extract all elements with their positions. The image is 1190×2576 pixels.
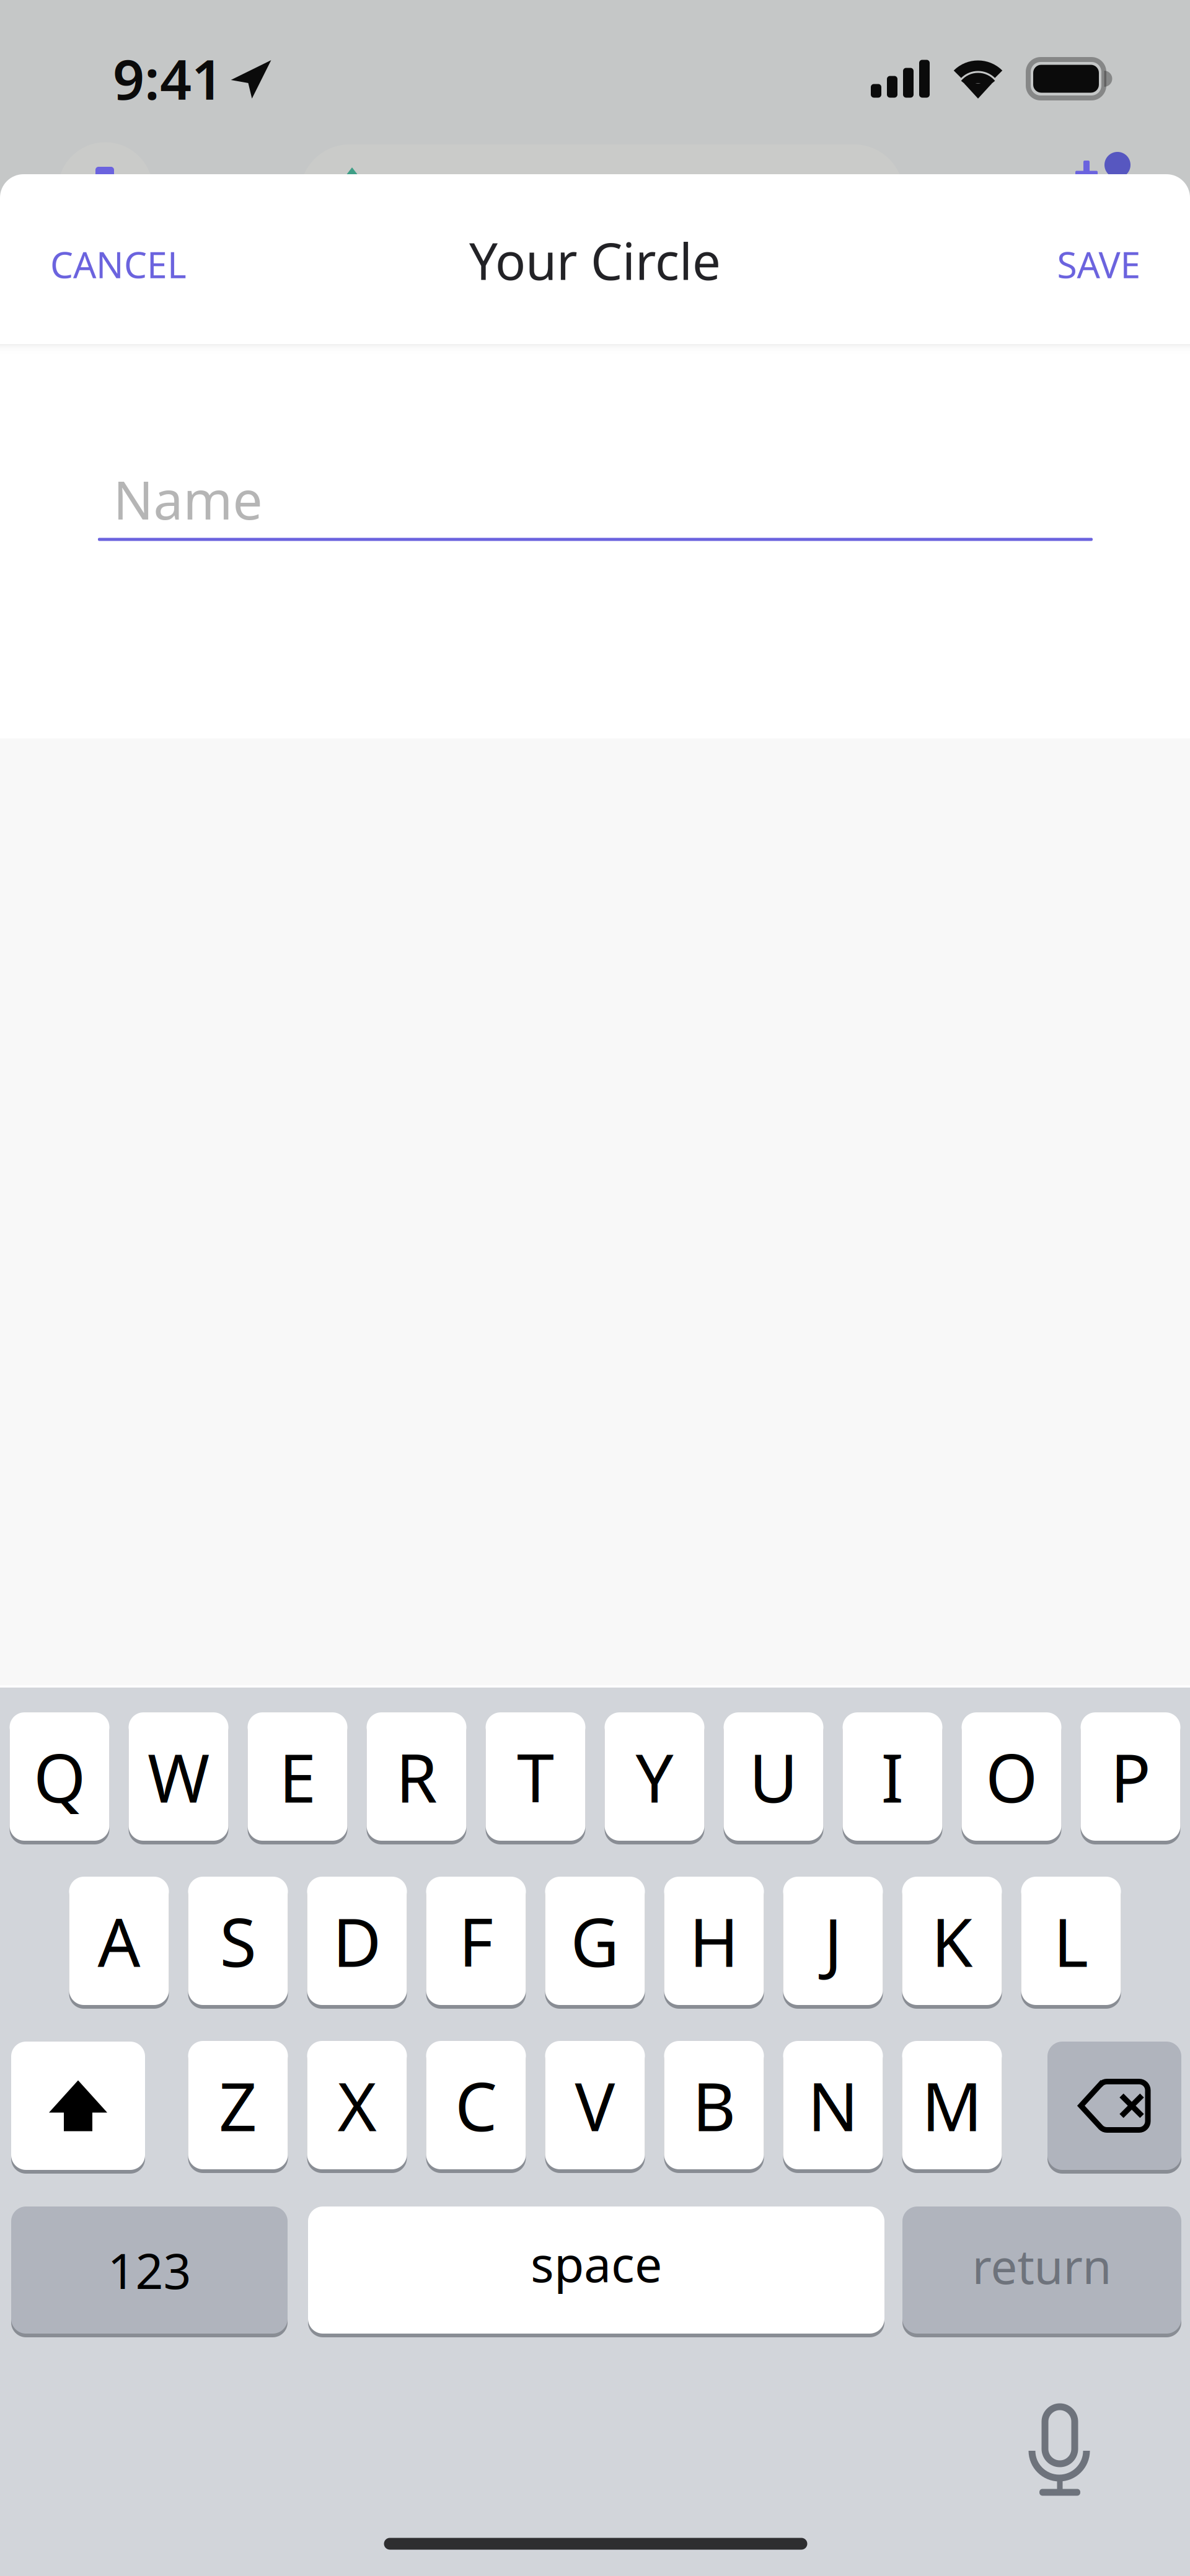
staticText: 9:41: [113, 41, 223, 115]
button[interactable]: P: [1081, 1712, 1180, 1841]
staticText: Q: [33, 1732, 86, 1821]
button[interactable]: A: [69, 1877, 169, 2005]
staticText: P: [1110, 1732, 1151, 1821]
button[interactable]: T: [486, 1712, 585, 1841]
button[interactable]: Delete: [1047, 2042, 1181, 2170]
staticText: X: [337, 2061, 377, 2150]
staticText: H: [689, 1896, 739, 1985]
staticText: Z: [219, 2061, 257, 2150]
button[interactable]: D: [307, 1877, 407, 2005]
button[interactable]: Dictate: [1001, 2390, 1119, 2508]
staticText: E: [279, 1732, 316, 1821]
button[interactable]: Y: [605, 1712, 704, 1841]
staticText: M: [922, 2061, 982, 2150]
button[interactable]: C: [426, 2041, 526, 2169]
button[interactable]: Q: [10, 1712, 109, 1841]
button[interactable]: L: [1021, 1877, 1121, 2005]
button[interactable]: F: [426, 1877, 526, 2005]
staticText: D: [333, 1896, 381, 1985]
staticText: Y: [636, 1732, 673, 1821]
staticText: Your Circle: [469, 227, 721, 294]
button[interactable]: S: [188, 1877, 288, 2005]
staticText: U: [749, 1732, 798, 1821]
button[interactable]: SAVE: [1040, 219, 1158, 309]
staticText: O: [985, 1732, 1038, 1821]
button[interactable]: I: [843, 1712, 942, 1841]
button[interactable]: CANCEL: [33, 219, 204, 309]
button[interactable]: Shift: [11, 2042, 145, 2170]
staticText: CANCEL: [50, 240, 187, 288]
button[interactable]: Z: [188, 2041, 288, 2169]
button[interactable]: R: [367, 1712, 466, 1841]
staticText: L: [1053, 1896, 1089, 1985]
button[interactable]: V: [545, 2041, 645, 2169]
button[interactable]: J: [783, 1877, 883, 2005]
button[interactable]: G: [545, 1877, 645, 2005]
staticText: G: [571, 1896, 619, 1985]
staticText: SAVE: [1057, 240, 1141, 288]
button[interactable]: space: [308, 2206, 884, 2334]
button[interactable]: W: [129, 1712, 228, 1841]
staticText: R: [396, 1732, 437, 1821]
staticText: Name: [113, 464, 262, 534]
staticText: N: [808, 2061, 858, 2150]
staticText: space: [531, 2231, 662, 2296]
button[interactable]: X: [307, 2041, 407, 2169]
staticText: return: [972, 2234, 1112, 2297]
staticText: A: [98, 1896, 140, 1985]
staticText: W: [148, 1732, 209, 1821]
button[interactable]: N: [783, 2041, 883, 2169]
staticText: J: [824, 1896, 842, 1985]
button[interactable]: K: [902, 1877, 1002, 2005]
staticText: F: [459, 1896, 493, 1985]
staticText: S: [220, 1896, 256, 1985]
button[interactable]: O: [962, 1712, 1061, 1841]
staticText: K: [931, 1896, 973, 1985]
button[interactable]: E: [248, 1712, 347, 1841]
staticText: V: [575, 2061, 615, 2150]
staticText: I: [881, 1732, 904, 1821]
staticText: T: [517, 1732, 554, 1821]
staticText: 123: [108, 2238, 191, 2302]
button[interactable]: U: [724, 1712, 823, 1841]
button[interactable]: 123: [11, 2206, 288, 2334]
button[interactable]: return: [902, 2206, 1181, 2334]
staticText: B: [692, 2061, 736, 2150]
staticText: C: [455, 2061, 497, 2150]
button[interactable]: M: [902, 2041, 1002, 2169]
button[interactable]: B: [664, 2041, 764, 2169]
button[interactable]: H: [664, 1877, 764, 2005]
